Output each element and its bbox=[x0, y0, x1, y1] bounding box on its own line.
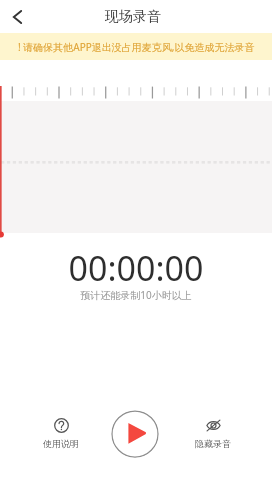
button[interactable]: 使用说明 bbox=[36, 418, 86, 449]
staticText: 隐藏录音 bbox=[195, 438, 231, 449]
staticText: 现场录音 bbox=[105, 8, 161, 26]
button[interactable]: Back bbox=[0, 0, 33, 33]
staticText: 预计还能录制10小时以上 bbox=[0, 288, 272, 302]
button[interactable]: 隐藏录音 bbox=[188, 418, 238, 449]
staticText: 00:00:00 bbox=[0, 245, 272, 291]
staticText: ! 请确保其他APP退出没占用麦克风,以免造成无法录音 bbox=[18, 40, 255, 54]
button[interactable]: Start recording bbox=[111, 410, 159, 458]
staticText: 使用说明 bbox=[43, 438, 79, 449]
